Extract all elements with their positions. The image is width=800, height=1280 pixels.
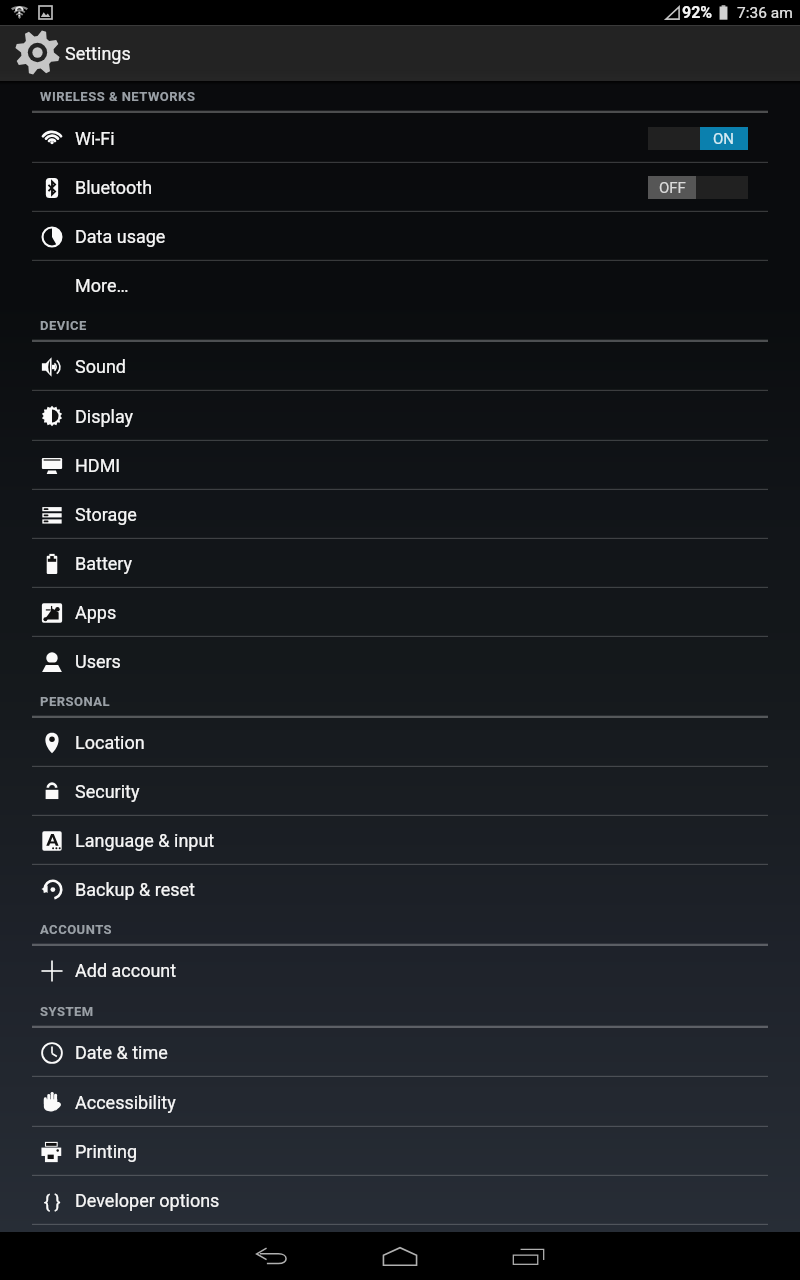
staticText: { }: [44, 1191, 61, 1212]
staticText: Sound: [75, 356, 126, 377]
staticText: Data usage: [75, 226, 166, 247]
staticText: ON: [713, 130, 735, 148]
button[interactable]: { }: [0, 1176, 800, 1225]
staticText: Add account: [75, 960, 177, 981]
staticText: Language & input: [75, 830, 215, 851]
button[interactable]: Recent apps: [506, 1234, 550, 1278]
staticText: Security: [75, 781, 140, 802]
button[interactable]: Apps: [0, 588, 800, 637]
staticText: Settings: [65, 43, 131, 64]
staticText: Display: [75, 406, 134, 427]
button[interactable]: Wi-Fi: [0, 113, 800, 163]
staticText: OFF: [659, 179, 686, 197]
button[interactable]: Printing: [0, 1127, 800, 1176]
staticText: Users: [75, 651, 121, 672]
staticText: Printing: [75, 1141, 138, 1162]
staticText: Accessibility: [75, 1092, 176, 1113]
button[interactable]: Display: [0, 391, 800, 441]
staticText: HDMI: [75, 455, 121, 476]
staticText: Developer options: [75, 1190, 220, 1211]
button[interactable]: Language & input: [0, 816, 800, 865]
staticText: 92%: [682, 3, 713, 22]
staticText: 7:36 am: [737, 4, 793, 22]
button[interactable]: Date & time: [0, 1028, 800, 1077]
staticText: Backup & reset: [75, 879, 195, 900]
staticText: ACCOUNTS: [40, 922, 113, 937]
button[interactable]: Battery: [0, 539, 800, 588]
button[interactable]: OFF: [648, 176, 748, 199]
staticText: Bluetooth: [75, 177, 153, 198]
button[interactable]: Storage: [0, 490, 800, 539]
button[interactable]: Back: [250, 1234, 294, 1278]
button[interactable]: Add account: [0, 946, 800, 995]
button[interactable]: Security: [0, 767, 800, 816]
button[interactable]: Location: [0, 718, 800, 767]
staticText: Battery: [75, 553, 133, 574]
staticText: PERSONAL: [40, 694, 111, 709]
button[interactable]: Backup & reset: [0, 865, 800, 914]
button[interactable]: HDMI: [0, 441, 800, 490]
staticText: Apps: [75, 602, 117, 623]
button[interactable]: Bluetooth: [0, 163, 800, 212]
staticText: DEVICE: [40, 318, 87, 333]
button[interactable]: Users: [0, 637, 800, 686]
button[interactable]: Accessibility: [0, 1077, 800, 1127]
staticText: Storage: [75, 504, 137, 525]
button[interactable]: Home: [378, 1234, 422, 1278]
staticText: More…: [75, 275, 129, 296]
staticText: Wi-Fi: [75, 128, 115, 149]
staticText: SYSTEM: [40, 1004, 94, 1019]
button[interactable]: More…: [0, 261, 800, 310]
button[interactable]: ON: [648, 127, 748, 150]
staticText: WIRELESS & NETWORKS: [40, 89, 196, 104]
button[interactable]: Sound: [0, 342, 800, 391]
staticText: Date & time: [75, 1042, 168, 1063]
staticText: Location: [75, 732, 145, 753]
button[interactable]: Data usage: [0, 212, 800, 261]
